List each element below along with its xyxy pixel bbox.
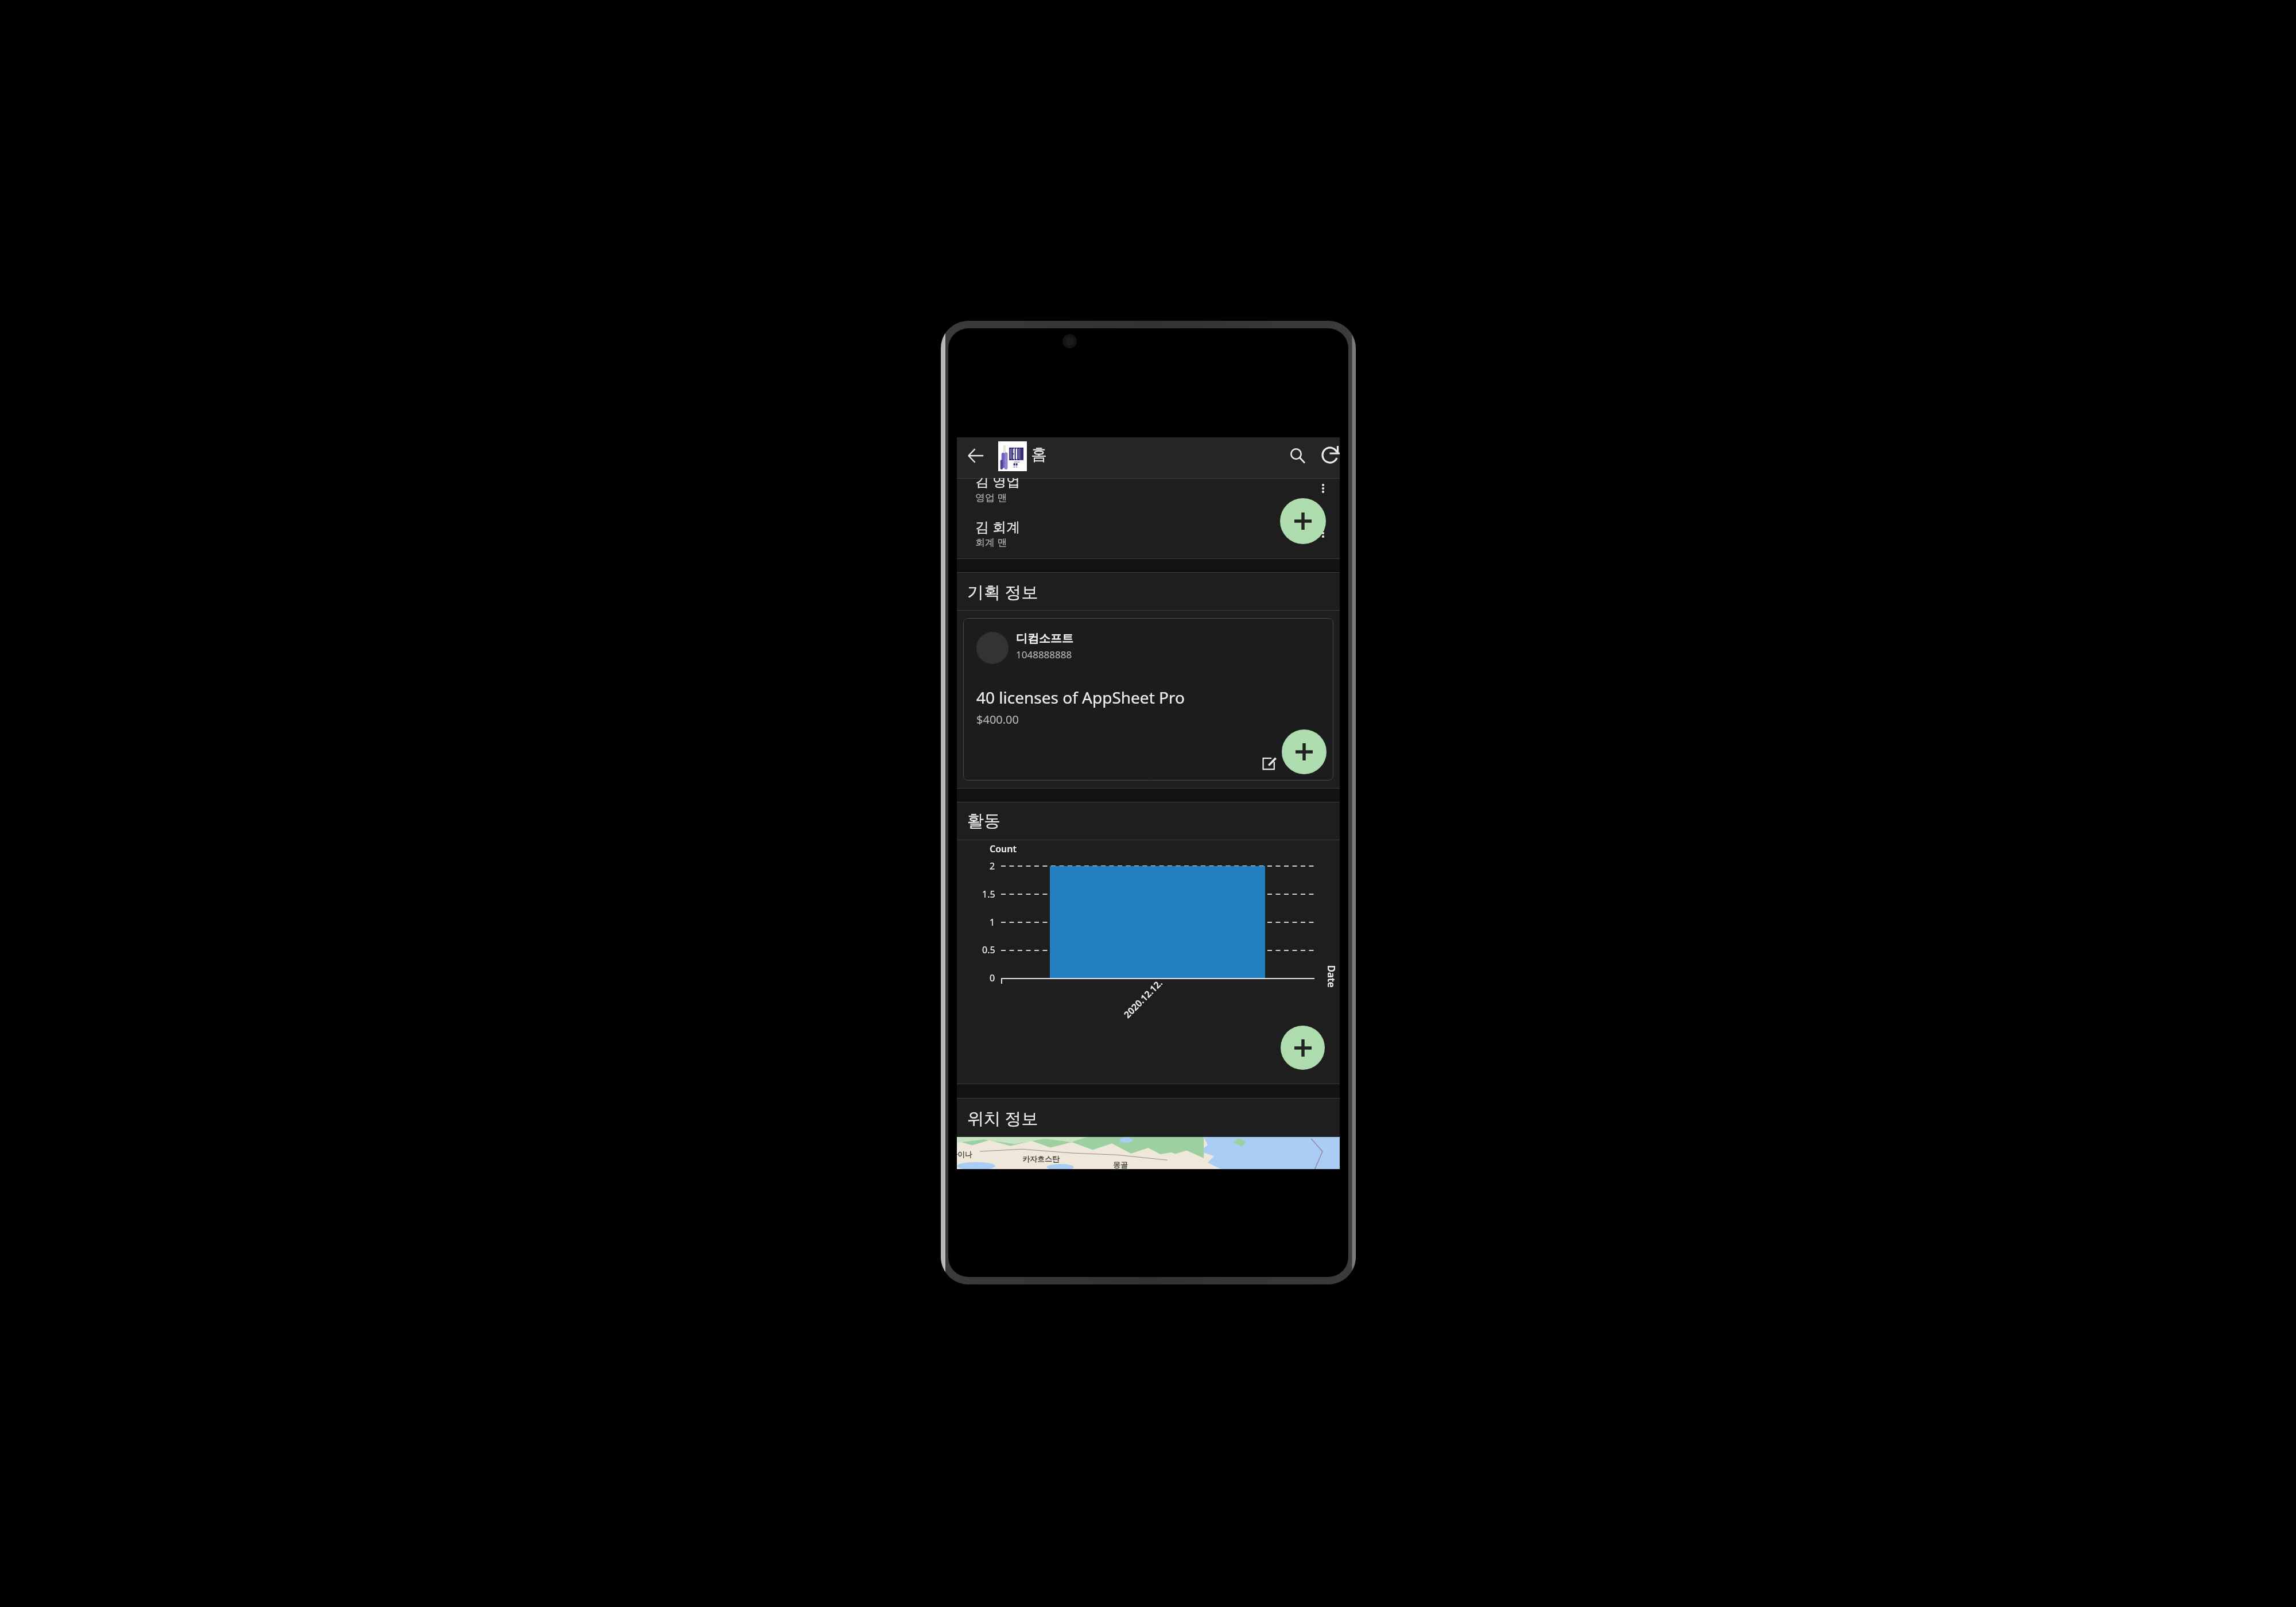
button[interactable]: 활동 (957, 802, 1340, 840)
staticText: 기획 정보 (967, 580, 1038, 603)
staticText: 회계 맨 (975, 535, 1007, 549)
button[interactable]: 위치 정보 (957, 1098, 1340, 1137)
staticText: 김 영업 (975, 478, 1021, 490)
staticText: 2 (990, 860, 995, 872)
staticText: 1048888888 (1016, 648, 1072, 661)
staticText: $400.00 (976, 712, 1019, 727)
staticText: 아이나 (957, 1150, 972, 1159)
button[interactable]: 김 회계 (957, 511, 1340, 557)
staticText: 영업 맨 (975, 491, 1007, 504)
staticText: 40 licenses of AppSheet Pro (976, 686, 1185, 708)
staticText: 2020.12.12. (1121, 977, 1165, 1021)
staticText: 홈 (1031, 444, 1047, 464)
staticText: 0.5 (982, 944, 995, 956)
button[interactable]: 디컴소프트 (963, 618, 1333, 781)
button[interactable]: More options (1317, 482, 1329, 495)
staticText: Date (1325, 965, 1338, 988)
staticText: 활동 (967, 810, 1000, 832)
staticText: 카자흐스탄 (1022, 1154, 1060, 1163)
button[interactable]: Add person (1280, 498, 1326, 544)
button[interactable]: Edit (1261, 755, 1278, 772)
button[interactable]: Refresh (1314, 440, 1340, 471)
staticText: Count (990, 843, 1017, 855)
staticText: 위치 정보 (967, 1107, 1038, 1129)
staticText: 디컴소프트 (1016, 631, 1073, 646)
button[interactable]: Add activity (1281, 1026, 1325, 1070)
staticText: 1 (990, 916, 995, 929)
staticText: 0 (990, 972, 995, 984)
staticText: 1.5 (982, 888, 995, 900)
button[interactable]: Search (1282, 440, 1313, 471)
button[interactable]: 기획 정보 (957, 573, 1340, 610)
staticText: 김 회계 (975, 517, 1021, 536)
button[interactable]: More options (1317, 527, 1329, 539)
staticText: 몽골 (1113, 1160, 1128, 1169)
button[interactable]: Add deal (1282, 729, 1327, 774)
button[interactable]: 김 영업 (957, 478, 1340, 511)
button[interactable]: Back (960, 440, 991, 471)
